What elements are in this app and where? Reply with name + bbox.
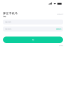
staticText: 使用其他方式 <box>57 13 63 15</box>
button[interactable]: 获取验证码 <box>56 28 61 30</box>
staticText: 确定 <box>32 39 34 40</box>
staticText: 手机号 <box>3 16 6 17</box>
button[interactable]: 使用其他方式 <box>57 13 63 15</box>
staticText: 获取验证码 <box>56 28 61 30</box>
staticText: 绑定手机号 <box>3 12 18 15</box>
button[interactable]: 确定 <box>3 36 63 43</box>
